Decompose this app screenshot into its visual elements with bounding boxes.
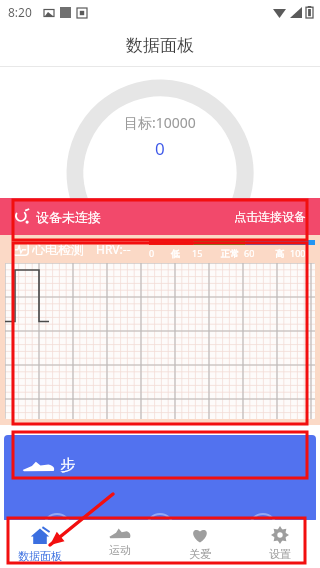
staticText: 15 <box>192 247 203 259</box>
other: 运动 <box>109 526 131 540</box>
other: 数据面板 <box>30 526 50 546</box>
staticText: 目标:10000 <box>124 113 196 132</box>
staticText: 60 <box>244 247 255 259</box>
staticText: 0 <box>155 137 165 160</box>
staticText: 高 <box>275 248 284 259</box>
button[interactable]: 关爱 <box>160 520 240 568</box>
staticText: 低 <box>171 248 180 259</box>
button[interactable]: 设备未连接 <box>0 198 320 235</box>
button[interactable]: 心电检测 <box>5 235 315 425</box>
staticText: 数据面板 <box>18 549 62 563</box>
staticText: 数据面板 <box>126 35 194 56</box>
button[interactable]: 数据面板 <box>0 520 80 568</box>
staticText: 关爱 <box>189 547 211 561</box>
staticText: 100 <box>290 247 306 259</box>
button[interactable]: 设置 <box>240 520 320 568</box>
staticText: 心电检测 <box>32 241 84 257</box>
staticText: 点击连接设备 <box>234 209 306 224</box>
staticText: HRV:-- <box>96 241 131 257</box>
button[interactable]: 运动 <box>80 520 160 568</box>
staticText: 正常 <box>221 248 239 259</box>
other: 关爱 <box>191 526 209 544</box>
other: 设置 <box>271 526 289 544</box>
staticText: 步 <box>60 456 75 475</box>
staticText: 设备未连接 <box>36 209 101 225</box>
staticText: 0 <box>149 247 155 259</box>
staticText: 8:20 <box>8 4 32 20</box>
staticText: 运动 <box>109 543 131 557</box>
button[interactable]: 步 <box>4 435 316 523</box>
staticText: 设置 <box>269 547 291 561</box>
